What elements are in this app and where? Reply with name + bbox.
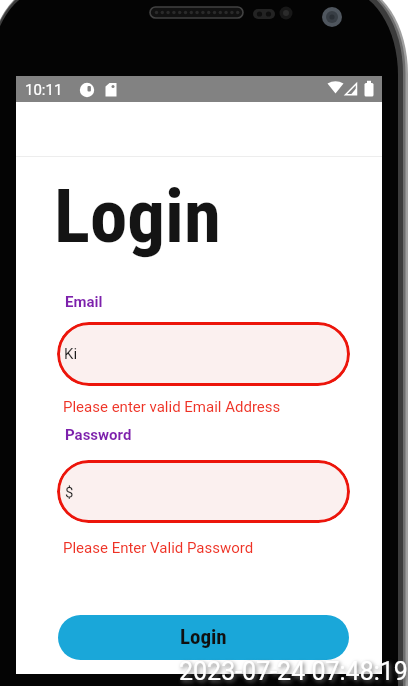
staticText: Please enter valid Email Address [63,398,281,416]
staticText: Please Enter Valid Password [63,539,254,557]
staticText: 10:11 [25,81,63,99]
button[interactable]: $ [57,460,350,523]
staticText: $ [65,483,74,501]
button[interactable]: Login [58,615,349,660]
staticText: Login [54,172,221,260]
staticText: 2023-07-24 07:48:19 [179,657,408,686]
staticText: Ki [64,345,78,363]
staticText: Email [65,293,103,311]
button[interactable]: Ki [57,322,350,386]
staticText: Password [65,426,132,444]
staticText: Login [180,625,227,650]
